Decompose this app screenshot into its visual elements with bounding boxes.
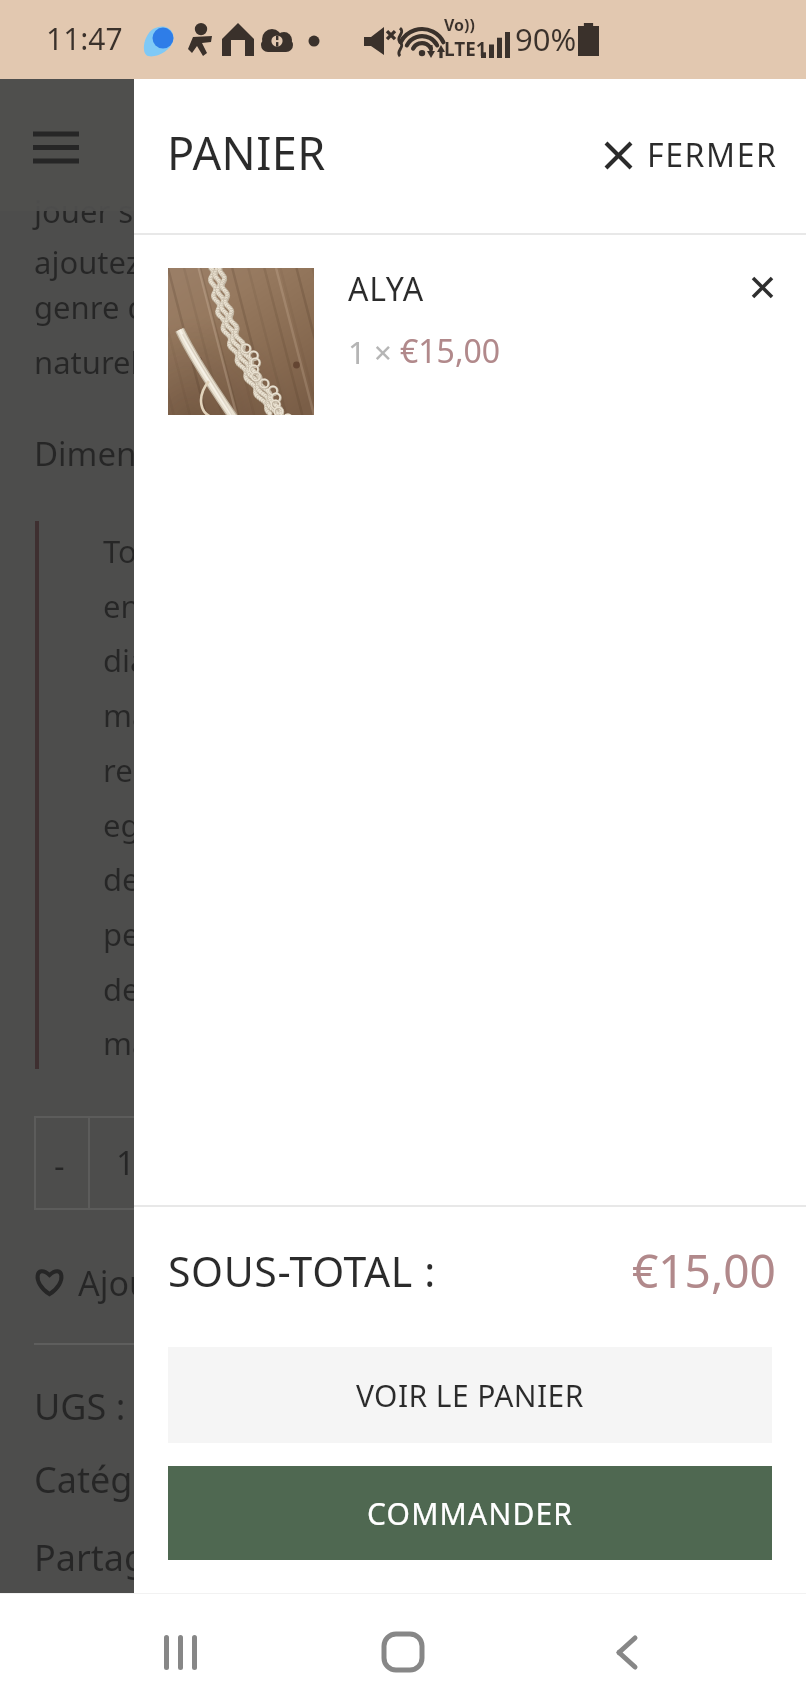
button[interactable]: COMMANDER bbox=[168, 1466, 772, 1560]
staticText: jouer sur ce bbox=[34, 190, 394, 232]
staticText: genre de la bbox=[34, 286, 394, 328]
staticText: 1 bbox=[348, 331, 374, 373]
staticText: ALYA bbox=[348, 267, 425, 311]
staticText: VOIR LE PANIER bbox=[356, 1375, 584, 1416]
staticText: FERMER bbox=[647, 133, 778, 177]
staticText: Partager bbox=[34, 1533, 394, 1582]
staticText: €15,00 bbox=[400, 329, 501, 373]
staticText: Tour de bbox=[103, 530, 463, 572]
staticText: PANIER bbox=[167, 122, 326, 183]
staticText: main. bbox=[103, 1022, 463, 1064]
button[interactable]: FERMER bbox=[606, 133, 778, 177]
staticText: Vo)) bbox=[444, 14, 475, 36]
button[interactable]: Back bbox=[582, 1607, 672, 1697]
staticText: Catégorie bbox=[34, 1455, 394, 1504]
staticText: ajoutez une bbox=[34, 241, 394, 283]
staticText: Dimensions bbox=[34, 431, 394, 476]
staticText: en 45cm bbox=[103, 585, 463, 627]
staticText: SOUS-TOTAL : bbox=[168, 1243, 436, 1299]
staticText: naturelle et bbox=[34, 341, 394, 383]
staticText: LTE1 bbox=[444, 36, 487, 62]
staticText: de la cou bbox=[103, 968, 463, 1010]
staticText: personna bbox=[103, 913, 463, 955]
staticText: realise a bbox=[103, 749, 463, 791]
button[interactable]: Home bbox=[358, 1607, 448, 1697]
staticText: UGS : AL bbox=[34, 1382, 394, 1431]
staticText: des perle bbox=[103, 858, 463, 900]
button[interactable]: Recents bbox=[134, 1607, 224, 1697]
staticText: 1 bbox=[116, 1140, 135, 1185]
staticText: macrame bbox=[103, 694, 463, 736]
staticText: diametre bbox=[103, 639, 463, 681]
staticText: €15,00 bbox=[632, 1239, 776, 1302]
staticText: × bbox=[374, 331, 400, 373]
button[interactable]: VOIR LE PANIER bbox=[168, 1347, 772, 1443]
staticText: - bbox=[54, 1143, 65, 1188]
staticText: COMMANDER bbox=[367, 1493, 574, 1534]
staticText: 90% bbox=[515, 18, 577, 60]
staticText: 11:47 bbox=[46, 18, 123, 59]
staticText: Ajouter a bbox=[78, 1260, 438, 1306]
button[interactable]: Supprimer l'article bbox=[740, 265, 784, 309]
staticText: egalemen bbox=[103, 804, 463, 846]
